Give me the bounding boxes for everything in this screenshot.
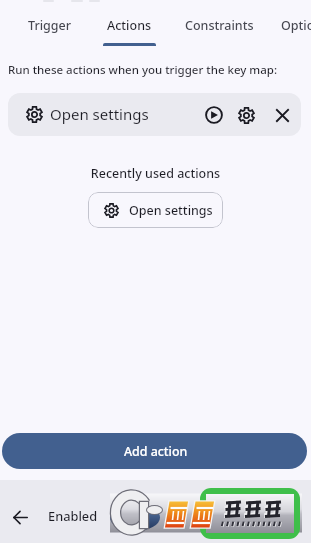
button[interactable]: Add action [2, 433, 307, 469]
button[interactable]: Actions [107, 17, 152, 34]
button[interactable]: Open settings [88, 192, 223, 228]
staticText: Actions [107, 17, 152, 34]
staticText: Open settings [50, 104, 149, 124]
button[interactable]: Optio [281, 17, 311, 34]
button[interactable]: Trigger [28, 17, 72, 34]
staticText: Enabled [48, 507, 98, 524]
button[interactable]: Back [7, 504, 33, 530]
staticText: Recently used actions [0, 165, 311, 182]
button[interactable]: Remove action [269, 102, 295, 128]
button[interactable]: Open settings [8, 93, 301, 136]
staticText: Constraints [185, 17, 254, 34]
staticText: Add action [124, 443, 188, 460]
staticText: Open settings [129, 202, 213, 219]
button[interactable]: Test action [201, 102, 227, 128]
staticText: Optio [281, 17, 311, 34]
staticText: Trigger [28, 17, 72, 34]
button[interactable]: Constraints [185, 17, 254, 34]
button[interactable]: Action settings [233, 102, 259, 128]
staticText: Run these actions when you trigger the k… [8, 62, 278, 78]
